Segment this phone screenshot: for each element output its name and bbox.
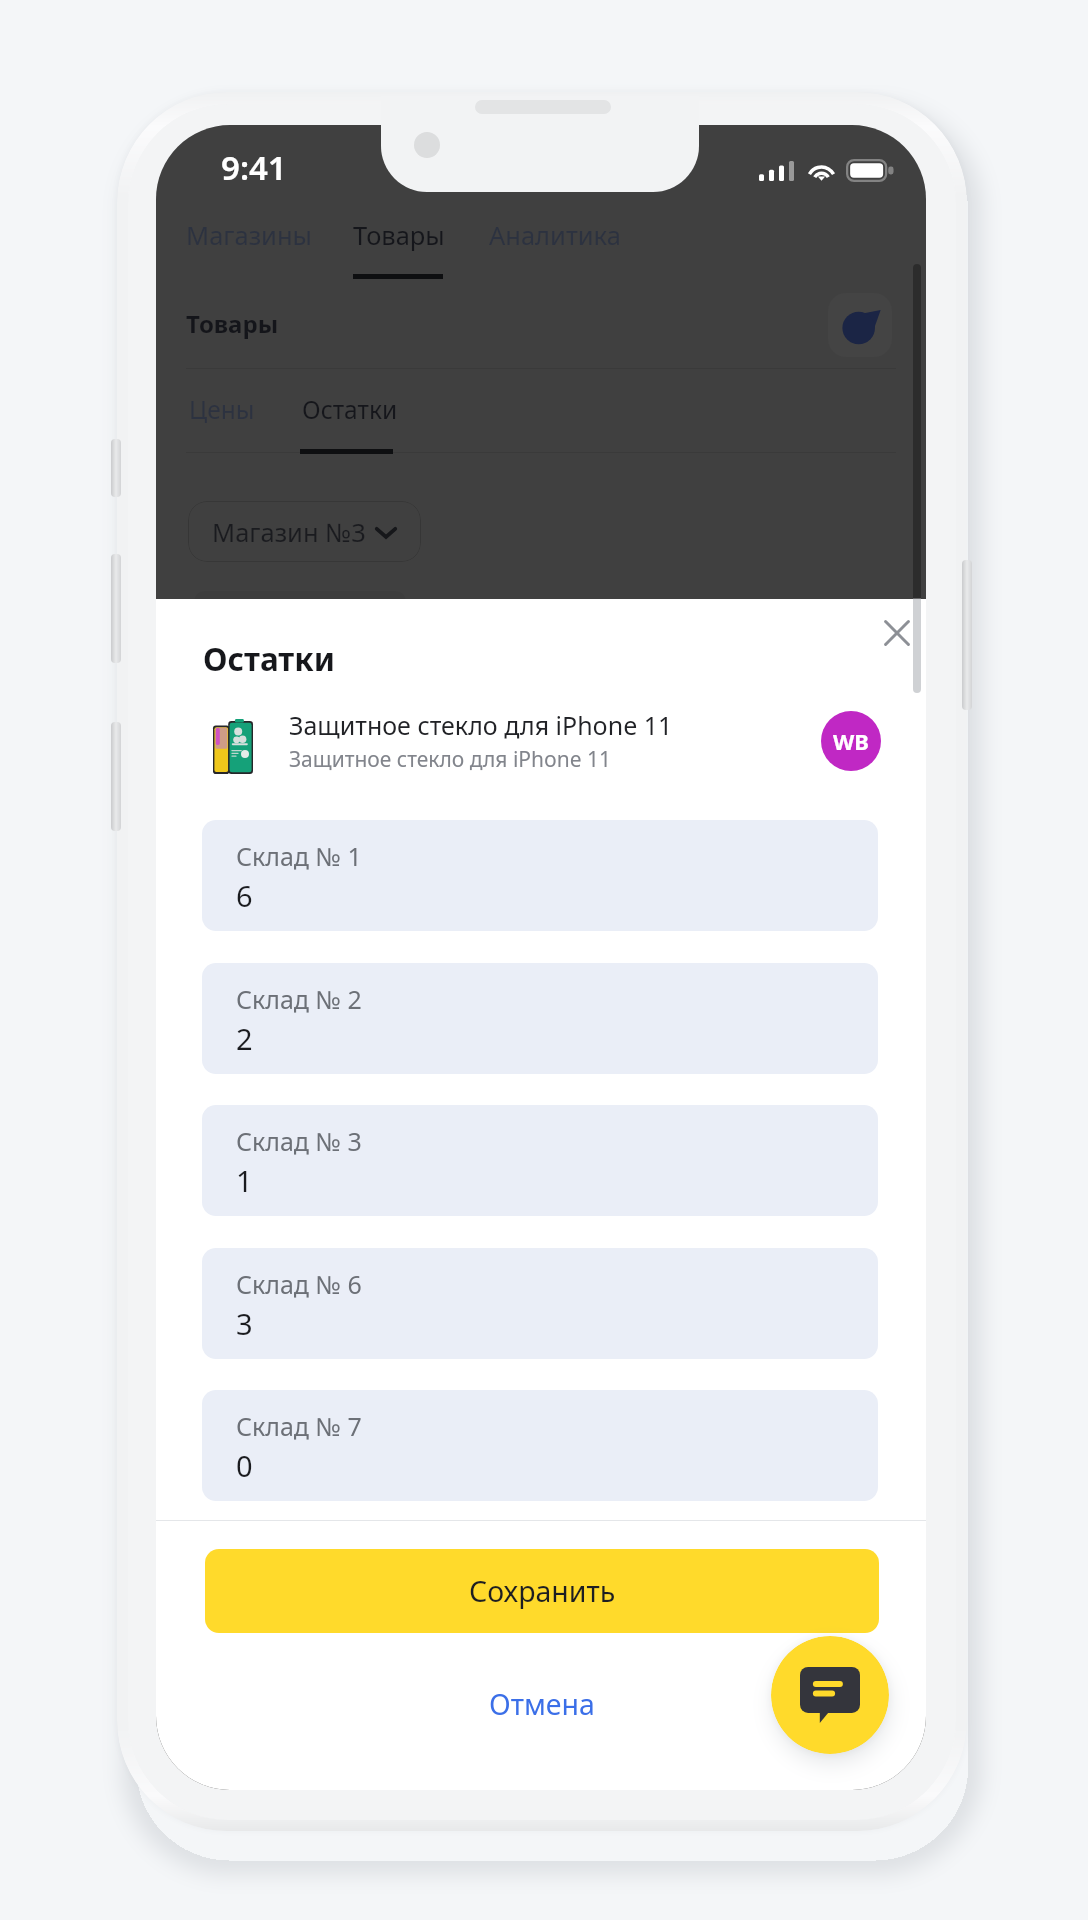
- staticText: Склад № 3: [236, 1124, 362, 1158]
- staticText: 1: [236, 1161, 253, 1200]
- button[interactable]: Товары: [341, 196, 457, 275]
- button[interactable]: Profile: [828, 293, 892, 357]
- staticText: Отмена: [489, 1685, 595, 1724]
- button[interactable]: WB: [821, 711, 881, 771]
- staticText: Магазин №3: [212, 515, 366, 550]
- staticText: 6: [236, 876, 253, 915]
- staticText: Остатки: [203, 637, 335, 680]
- button[interactable]: Склад № 2: [202, 963, 878, 1074]
- staticText: Склад № 2: [236, 982, 362, 1016]
- staticText: Склад № 1: [236, 839, 362, 873]
- staticText: Склад № 7: [236, 1409, 362, 1443]
- button[interactable]: Склад № 3: [202, 1105, 878, 1216]
- staticText: Сохранить: [469, 1572, 616, 1611]
- button[interactable]: Склад № 1: [202, 820, 878, 931]
- staticText: Защитное стекло для iPhone 11: [289, 708, 673, 742]
- staticText: WB: [833, 726, 869, 756]
- button[interactable]: Магазины: [174, 196, 324, 275]
- staticText: Товары: [186, 307, 279, 340]
- staticText: Защитное стекло для iPhone 11: [289, 745, 612, 774]
- button[interactable]: Отмена: [417, 1678, 667, 1730]
- staticText: 9:41: [221, 145, 287, 190]
- button[interactable]: Склад № 6: [202, 1248, 878, 1359]
- button[interactable]: Close: [872, 608, 922, 658]
- staticText: Остатки: [302, 393, 398, 426]
- button[interactable]: Цены: [177, 371, 267, 448]
- staticText: Товары: [353, 218, 445, 253]
- button[interactable]: Остатки: [290, 371, 410, 448]
- staticText: 2: [236, 1019, 253, 1058]
- staticText: Магазины: [186, 218, 312, 253]
- button[interactable]: Chat: [771, 1636, 889, 1754]
- staticText: 3: [236, 1304, 253, 1343]
- button[interactable]: Магазин №3: [188, 501, 421, 562]
- staticText: Склад № 6: [236, 1267, 362, 1301]
- staticText: Цены: [189, 393, 255, 426]
- button[interactable]: Склад № 7: [202, 1390, 878, 1501]
- staticText: 0: [236, 1446, 253, 1485]
- button[interactable]: Сохранить: [205, 1549, 879, 1633]
- staticText: Аналитика: [489, 218, 621, 253]
- button[interactable]: Аналитика: [477, 196, 633, 275]
